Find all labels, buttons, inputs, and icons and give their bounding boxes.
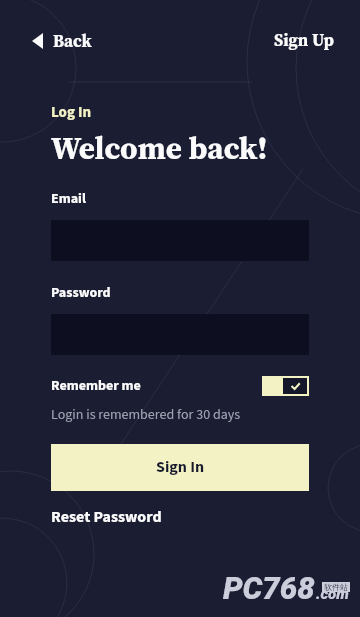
staticText: Sign In	[156, 456, 205, 479]
staticText: Sign Up	[274, 28, 334, 51]
staticText: Back	[53, 29, 92, 52]
staticText: .com	[316, 585, 349, 603]
staticText: Password	[51, 283, 111, 303]
button[interactable]: Remember me	[262, 376, 309, 396]
staticText: Email	[51, 189, 86, 209]
button[interactable]: Back	[24, 23, 100, 58]
staticText: Login is remembered for 30 days	[51, 405, 241, 425]
button[interactable]: Sign In	[51, 444, 309, 491]
staticText: Log In	[51, 102, 91, 123]
button[interactable]: Sign Up	[266, 22, 342, 57]
button[interactable]: Reset Password	[43, 502, 170, 533]
staticText: PC768	[223, 570, 315, 606]
staticText: 软件站	[324, 582, 348, 592]
staticText: Welcome back!	[51, 127, 268, 170]
staticText: Reset Password	[51, 506, 162, 529]
staticText: Remember me	[51, 376, 141, 396]
